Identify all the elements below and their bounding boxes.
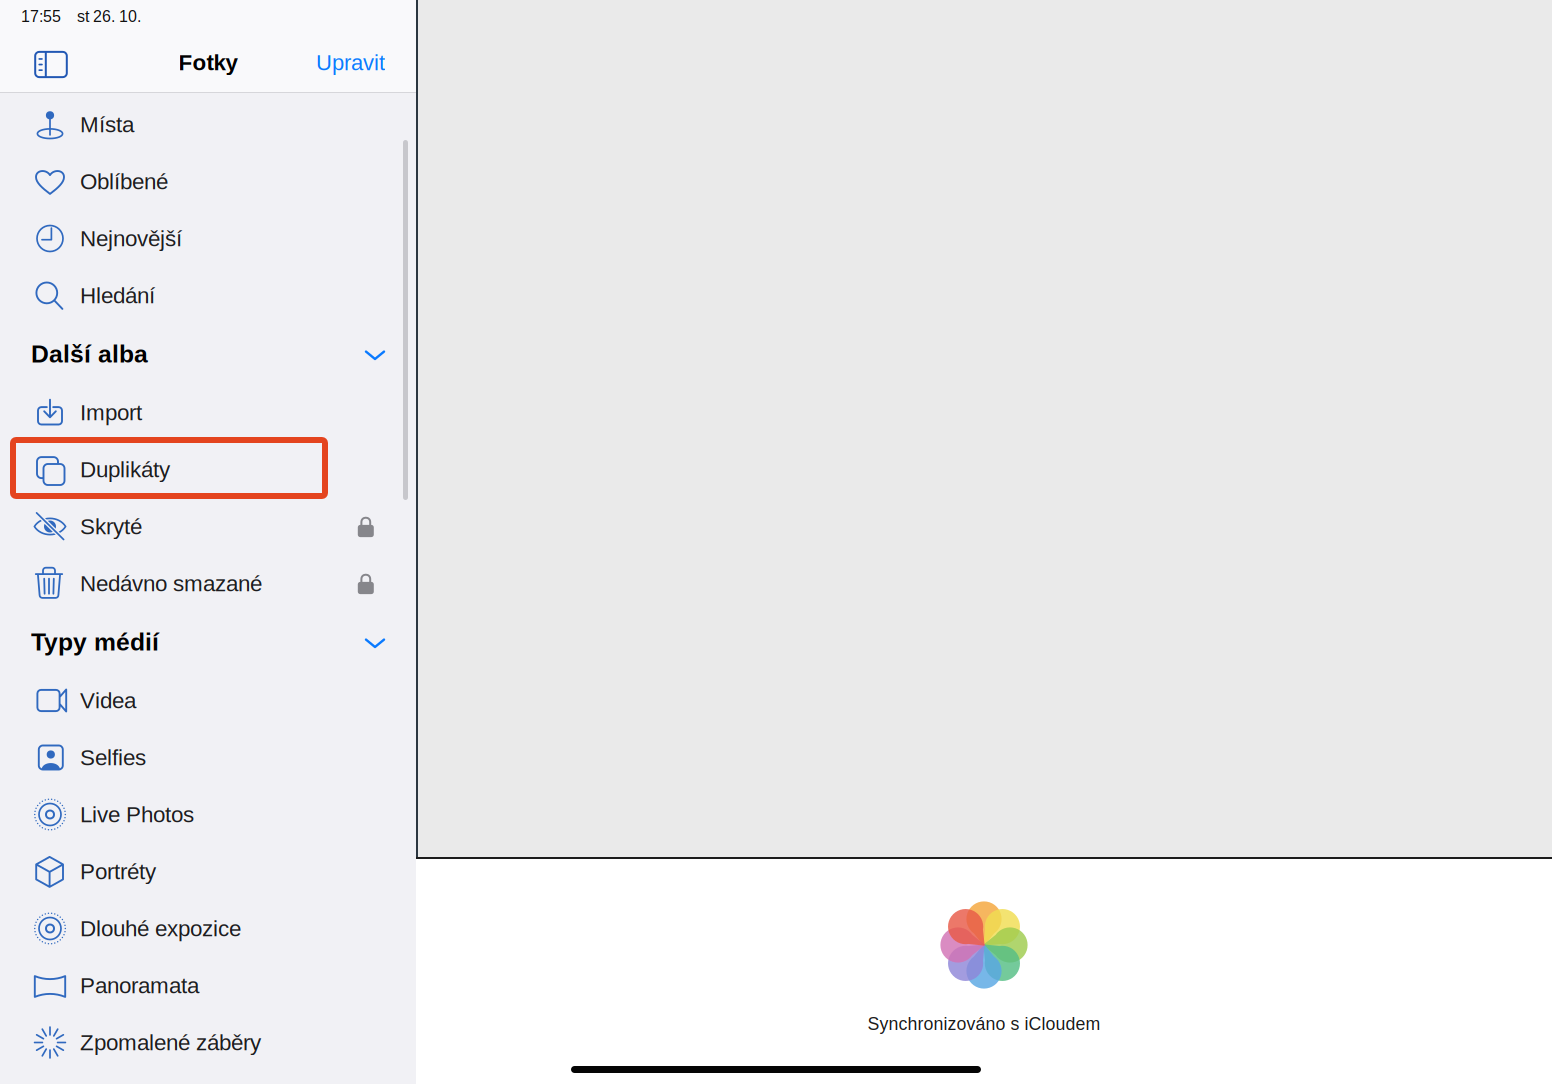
staticText: Panoramata	[80, 973, 199, 998]
button[interactable]: Skryté	[0, 498, 416, 555]
button[interactable]: Sbalit Typy médií	[353, 620, 397, 664]
staticText: Hledání	[80, 283, 155, 308]
staticText: st 26. 10.	[77, 8, 141, 25]
staticText: Nedávno smazané	[80, 571, 262, 596]
staticText: Synchronizováno s iCloudem	[867, 1014, 1100, 1034]
staticText: Dlouhé expozice	[80, 916, 241, 941]
button[interactable]: Hledání	[0, 267, 416, 324]
button[interactable]: Portréty	[0, 843, 416, 900]
button[interactable]: Nedávno smazané	[0, 555, 416, 612]
button[interactable]: Upravit	[305, 39, 396, 86]
staticText: Live Photos	[80, 802, 194, 827]
button[interactable]: Live Photos	[0, 786, 416, 843]
button[interactable]: Skrýt boční panel	[28, 39, 74, 85]
staticText: Skryté	[80, 514, 142, 539]
staticText: Duplikáty	[80, 457, 170, 482]
staticText: 17:55	[21, 8, 61, 25]
button[interactable]: Místa	[0, 96, 416, 153]
button[interactable]: Duplikáty	[0, 441, 416, 498]
staticText: Videa	[80, 688, 136, 713]
staticText: Upravit	[316, 50, 385, 75]
button[interactable]: Import	[0, 384, 416, 441]
staticText: Nejnovější	[80, 226, 182, 251]
button[interactable]: Panoramata	[0, 957, 416, 1014]
staticText: Import	[80, 400, 142, 425]
staticText: Fotky	[178, 50, 237, 75]
button[interactable]: Zpomalené záběry	[0, 1014, 416, 1071]
staticText: Oblíbené	[80, 169, 168, 194]
staticText: Zpomalené záběry	[80, 1030, 261, 1055]
staticText: Portréty	[80, 859, 156, 884]
staticText: Další alba	[31, 340, 148, 368]
staticText: Typy médií	[31, 628, 159, 656]
button[interactable]: Nejnovější	[0, 210, 416, 267]
button[interactable]: Sbalit Další alba	[353, 332, 397, 376]
button[interactable]: Oblíbené	[0, 153, 416, 210]
button[interactable]: Dlouhé expozice	[0, 900, 416, 957]
button[interactable]: Videa	[0, 672, 416, 729]
button[interactable]: Selfies	[0, 729, 416, 786]
staticText: Selfies	[80, 745, 146, 770]
staticText: Místa	[80, 112, 134, 137]
